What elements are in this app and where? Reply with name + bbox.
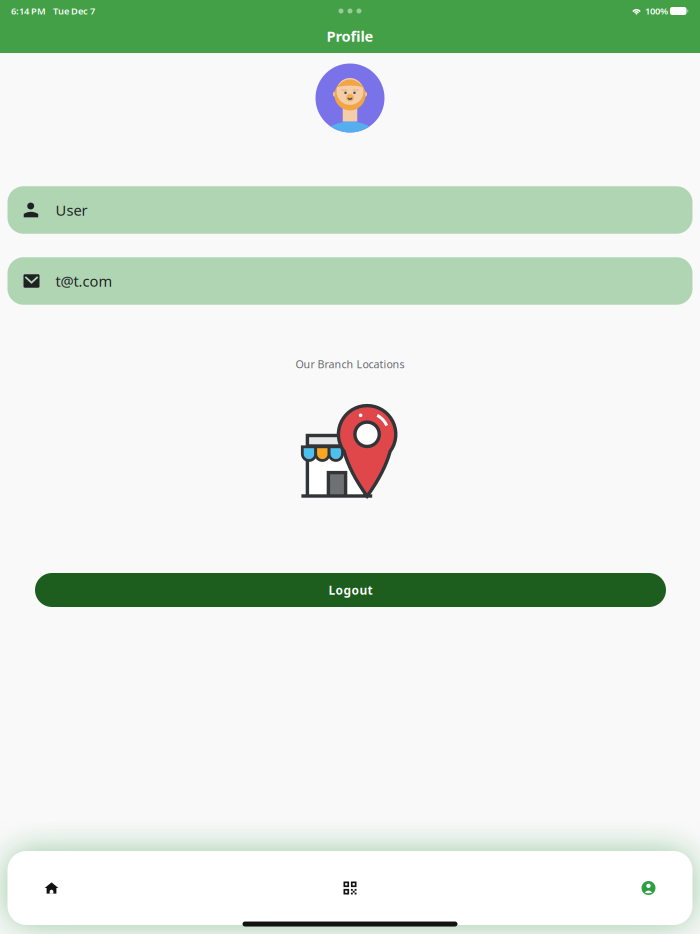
button[interactable]: Profile [634, 851, 662, 925]
staticText: Profile [326, 26, 373, 46]
button[interactable]: Logout [35, 573, 666, 607]
staticText: 6:14 PM [11, 5, 46, 17]
button[interactable]: User [7, 186, 692, 234]
staticText: 100% [645, 5, 668, 17]
staticText: Logout [328, 582, 372, 598]
button[interactable]: Scan [336, 851, 364, 925]
staticText: User [55, 200, 87, 220]
button[interactable]: Home [37, 851, 65, 925]
button[interactable]: t@t.com [7, 257, 692, 305]
staticText: Our Branch Locations [295, 357, 404, 371]
staticText: t@t.com [55, 271, 112, 291]
staticText: Tue Dec 7 [53, 5, 95, 17]
